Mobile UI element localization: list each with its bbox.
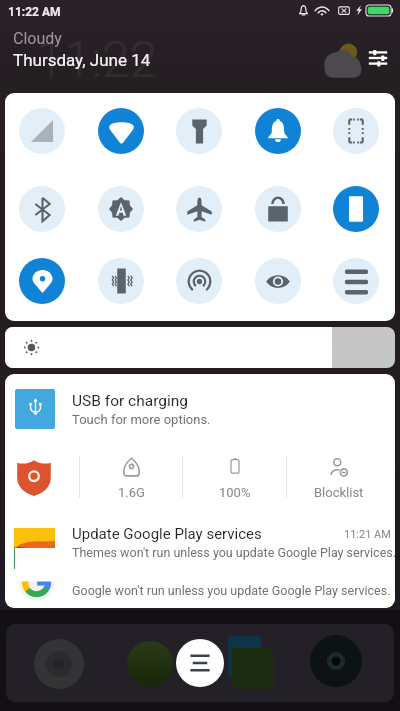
staticText: Update Google Play services: [72, 525, 262, 543]
button[interactable]: Mobile data: [19, 108, 65, 154]
staticText: Thursday, June 14: [13, 50, 151, 70]
button[interactable]: Auto rotate: [333, 186, 379, 232]
button[interactable]: Hotspot: [176, 258, 222, 304]
button[interactable]: Battery: [183, 450, 286, 506]
button[interactable]: Flashlight: [176, 108, 222, 154]
button[interactable]: USB for charging: [5, 374, 395, 450]
staticText: Google won't run unless you update Googl…: [72, 583, 391, 598]
button[interactable]: Reading mode: [255, 258, 301, 304]
staticText: Themes won't run unless you update Googl…: [72, 545, 395, 560]
staticText: 11:21 AM: [344, 528, 391, 541]
staticText: Cloudy: [13, 29, 62, 48]
staticText: 11:22: [36, 31, 158, 90]
staticText: 11:22 AM: [8, 5, 61, 19]
button[interactable]: Screenshot: [333, 108, 379, 154]
button[interactable]: More settings: [333, 258, 379, 304]
button[interactable]: Update Google Play services: [5, 506, 395, 572]
button[interactable]: Vibrate: [98, 258, 144, 304]
button[interactable]: Edit quick settings: [362, 42, 394, 74]
staticText: 1.6G: [118, 485, 145, 500]
staticText: Blocklist: [314, 485, 364, 500]
button[interactable]: Google won't run unless you update Googl…: [5, 568, 395, 608]
button[interactable]: Brightness: [5, 327, 395, 368]
button[interactable]: Blocklist: [287, 450, 390, 506]
button[interactable]: Bluetooth: [19, 186, 65, 232]
button[interactable]: Screen lock: [255, 186, 301, 232]
button[interactable]: Airplane mode: [176, 186, 222, 232]
staticText: Touch for more options.: [72, 412, 211, 427]
button[interactable]: Location: [19, 258, 65, 304]
button[interactable]: Auto brightness: [98, 186, 144, 232]
staticText: USB for charging: [72, 392, 189, 410]
staticText: 100%: [219, 485, 251, 500]
button[interactable]: Sound: [255, 108, 301, 154]
button[interactable]: Wi-Fi: [98, 108, 144, 154]
button[interactable]: Memory cleanup: [80, 450, 183, 506]
button[interactable]: Clear all notifications: [176, 639, 224, 687]
